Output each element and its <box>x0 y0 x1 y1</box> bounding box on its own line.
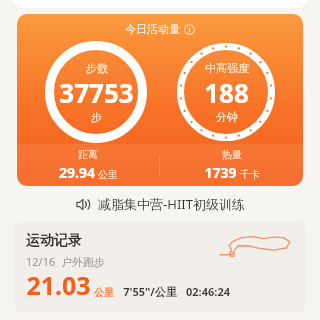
staticText: 千卡 <box>240 168 260 181</box>
staticText: 今日活动量 <box>125 22 180 36</box>
staticText: 7'55"/公里 <box>123 284 177 299</box>
staticText: 02:46:24 <box>186 284 230 299</box>
staticText: 中高强度 <box>205 61 249 75</box>
staticText: 公里 <box>94 286 114 299</box>
button[interactable]: Audio <box>0 186 320 222</box>
staticText: 运动记录 <box>26 232 82 250</box>
staticText: 分钟 <box>216 110 238 124</box>
staticText: 1739 <box>204 163 237 182</box>
staticText: 公里 <box>98 168 118 181</box>
staticText: 37753 <box>59 75 134 110</box>
staticText: 21.03 <box>26 268 91 302</box>
staticText: 29.94 <box>59 163 95 182</box>
staticText: 热量 <box>222 148 242 161</box>
staticText: 距离 <box>78 148 98 161</box>
staticText: 减脂集中营-HIIT初级训练 <box>98 195 245 213</box>
staticText: 步数 <box>86 61 108 75</box>
button[interactable]: Info <box>184 24 195 35</box>
button[interactable]: 运动记录 <box>14 222 306 312</box>
other: Audio <box>76 197 91 212</box>
staticText: 12/16 户外跑步 <box>26 254 105 269</box>
staticText: 188 <box>204 75 249 110</box>
staticText: 步 <box>91 110 102 124</box>
button[interactable]: 今日活动量 <box>17 14 303 186</box>
